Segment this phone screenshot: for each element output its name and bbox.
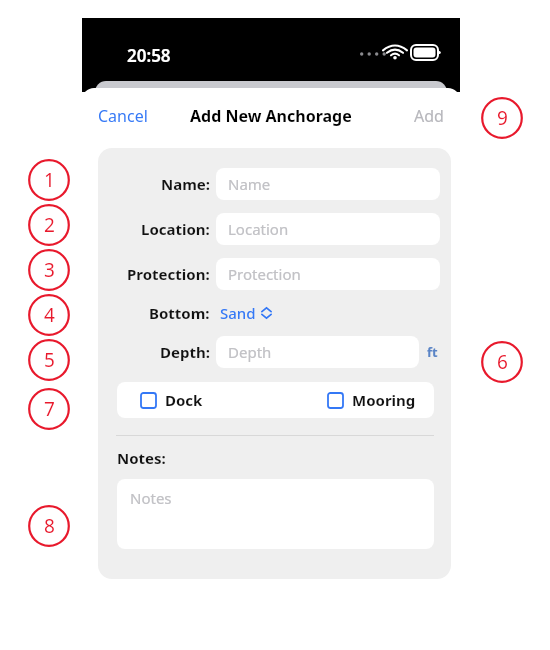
staticText: 1 — [44, 167, 55, 193]
staticText: Dock — [165, 390, 203, 410]
staticText: Protection — [228, 264, 301, 284]
button[interactable]: Mooring — [328, 390, 416, 410]
staticText: Depth: — [160, 342, 210, 362]
staticText: Add — [414, 105, 444, 127]
staticText: ft — [427, 343, 438, 361]
button[interactable]: Add — [406, 99, 452, 133]
staticText: Sand — [220, 303, 256, 323]
staticText: 6 — [497, 349, 508, 375]
staticText: Name: — [161, 174, 210, 194]
staticText: Mooring — [352, 390, 416, 410]
staticText: 3 — [44, 257, 55, 283]
staticText: Location: — [141, 219, 210, 239]
button[interactable]: Sand — [220, 303, 272, 323]
staticText: 20:58 — [127, 44, 171, 67]
button[interactable]: Name — [216, 168, 440, 200]
staticText: Notes — [130, 488, 172, 508]
staticText: Protection: — [127, 264, 210, 284]
button[interactable]: Protection — [216, 258, 440, 290]
button[interactable]: Dock — [141, 390, 203, 410]
staticText: 7 — [44, 396, 55, 422]
staticText: 9 — [497, 105, 508, 131]
staticText: 8 — [44, 513, 55, 539]
staticText: 4 — [44, 302, 55, 328]
button[interactable]: Location — [216, 213, 440, 245]
staticText: Cancel — [98, 105, 148, 127]
staticText: 5 — [44, 347, 55, 373]
staticText: Bottom: — [149, 303, 210, 323]
button[interactable]: Notes — [117, 479, 434, 549]
staticText: Location — [228, 219, 289, 239]
staticText: Name — [228, 174, 271, 194]
staticText: 2 — [44, 212, 55, 238]
staticText: Notes: — [117, 448, 166, 468]
button[interactable]: Cancel — [90, 99, 156, 133]
button[interactable]: Depth — [216, 336, 419, 368]
staticText: Add New Anchorage — [190, 105, 352, 127]
staticText: Depth — [228, 342, 272, 362]
